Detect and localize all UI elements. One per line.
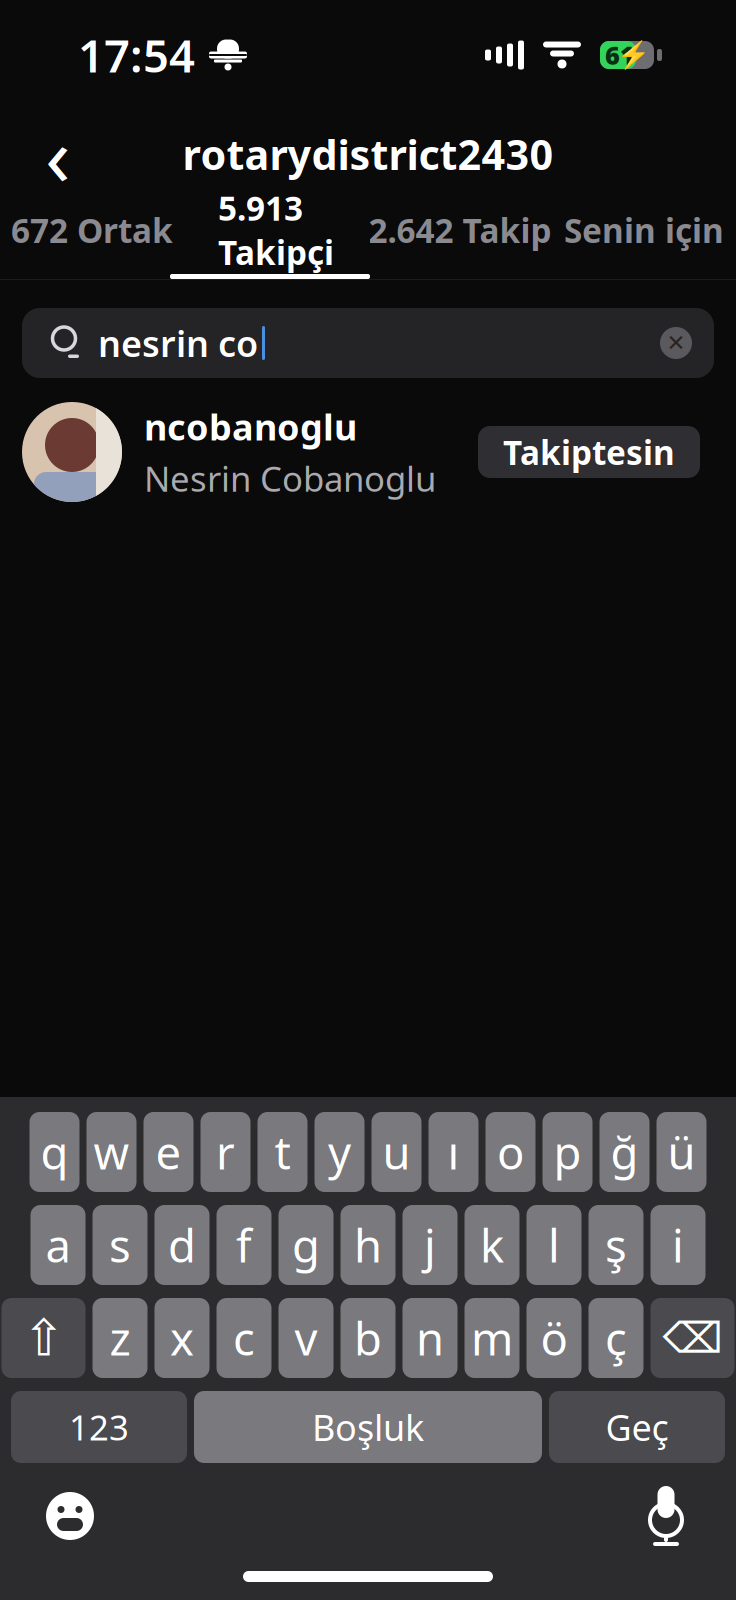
- staticText: i: [672, 1215, 684, 1275]
- staticText: r: [216, 1122, 235, 1182]
- staticText: h: [354, 1215, 382, 1275]
- button[interactable]: Emoji keyboard: [30, 1481, 110, 1551]
- staticText: j: [424, 1215, 436, 1275]
- staticText: u: [382, 1122, 410, 1182]
- button[interactable]: p: [542, 1112, 592, 1192]
- staticText: Nesrin Cobanoglu: [144, 455, 436, 501]
- staticText: ncobanoglu: [144, 403, 357, 450]
- staticText: o: [497, 1122, 524, 1182]
- button[interactable]: w: [86, 1112, 136, 1192]
- staticText: x: [170, 1308, 194, 1368]
- button[interactable]: t: [257, 1112, 307, 1192]
- staticText: ç: [605, 1308, 627, 1368]
- button[interactable]: Clear search: [646, 313, 706, 373]
- staticText: 2.642 Takip: [368, 208, 551, 252]
- button[interactable]: ş: [588, 1205, 643, 1285]
- staticText: l: [548, 1215, 560, 1275]
- button[interactable]: g: [278, 1205, 333, 1285]
- button[interactable]: l: [526, 1205, 581, 1285]
- staticText: nesrin co: [98, 319, 258, 367]
- staticText: ı: [447, 1122, 459, 1182]
- staticText: Boşluk: [312, 1403, 424, 1451]
- staticText: 5.913 Takipçi: [218, 186, 334, 274]
- staticText: c: [233, 1308, 255, 1368]
- staticText: b: [354, 1308, 382, 1368]
- button[interactable]: u: [371, 1112, 421, 1192]
- staticText: 123: [69, 1404, 129, 1450]
- button[interactable]: i: [650, 1205, 705, 1285]
- staticText: ⌫: [662, 1314, 722, 1362]
- button[interactable]: h: [340, 1205, 395, 1285]
- staticText: w: [93, 1122, 129, 1182]
- button[interactable]: Delete: [650, 1298, 734, 1378]
- staticText: k: [480, 1215, 504, 1275]
- staticText: a: [45, 1215, 70, 1275]
- staticText: ş: [605, 1215, 627, 1275]
- button[interactable]: ğ: [599, 1112, 649, 1192]
- button[interactable]: Geç: [549, 1391, 725, 1463]
- button[interactable]: Back: [16, 116, 100, 192]
- button[interactable]: d: [154, 1205, 209, 1285]
- staticText: d: [168, 1215, 196, 1275]
- button[interactable]: n: [402, 1298, 457, 1378]
- staticText: p: [553, 1122, 581, 1182]
- button[interactable]: x: [154, 1298, 209, 1378]
- staticText: ğ: [610, 1122, 638, 1182]
- button[interactable]: k: [464, 1205, 519, 1285]
- button[interactable]: 123: [11, 1391, 187, 1463]
- button[interactable]: ç: [588, 1298, 643, 1378]
- staticText: ✕: [666, 330, 685, 356]
- button[interactable]: y: [314, 1112, 364, 1192]
- staticText: t: [274, 1122, 290, 1182]
- button[interactable]: e: [143, 1112, 193, 1192]
- button[interactable]: 672 Ortak: [0, 198, 184, 262]
- button[interactable]: ü: [656, 1112, 706, 1192]
- staticText: g: [292, 1215, 320, 1275]
- staticText: s: [109, 1215, 131, 1275]
- button[interactable]: r: [200, 1112, 250, 1192]
- staticText: rotarydistrict2430: [182, 127, 553, 181]
- staticText: m: [471, 1308, 513, 1368]
- staticText: 17:54: [78, 25, 195, 85]
- staticText: ü: [667, 1122, 695, 1182]
- staticText: z: [109, 1308, 130, 1368]
- staticText: e: [155, 1122, 181, 1182]
- staticText: ⇧: [22, 1309, 64, 1367]
- button[interactable]: ı: [428, 1112, 478, 1192]
- staticText: Takiptesin: [503, 430, 675, 474]
- staticText: 672 Ortak: [11, 208, 173, 252]
- staticText: ⚡: [617, 40, 650, 70]
- button[interactable]: o: [485, 1112, 535, 1192]
- button[interactable]: v: [278, 1298, 333, 1378]
- button[interactable]: Shift: [1, 1298, 85, 1378]
- button[interactable]: 2.642 Takip: [368, 198, 552, 262]
- button[interactable]: ncobanoglu: [0, 378, 736, 504]
- button[interactable]: a: [30, 1205, 85, 1285]
- staticText: Senin için: [564, 208, 724, 252]
- staticText: 61: [605, 38, 635, 72]
- button[interactable]: s: [92, 1205, 147, 1285]
- staticText: ö: [540, 1308, 567, 1368]
- staticText: n: [416, 1308, 444, 1368]
- button[interactable]: ö: [526, 1298, 581, 1378]
- button[interactable]: q: [29, 1112, 79, 1192]
- staticText: f: [236, 1215, 252, 1275]
- staticText: v: [294, 1308, 317, 1368]
- button[interactable]: j: [402, 1205, 457, 1285]
- button[interactable]: 5.913 Takipçi: [184, 198, 368, 262]
- staticText: ‹: [45, 99, 71, 209]
- button[interactable]: z: [92, 1298, 147, 1378]
- staticText: Geç: [605, 1403, 668, 1451]
- button[interactable]: m: [464, 1298, 519, 1378]
- staticText: q: [40, 1122, 68, 1182]
- button[interactable]: Senin için: [552, 198, 736, 262]
- button[interactable]: b: [340, 1298, 395, 1378]
- button[interactable]: Boşluk: [194, 1391, 542, 1463]
- button[interactable]: c: [216, 1298, 271, 1378]
- button[interactable]: f: [216, 1205, 271, 1285]
- staticText: y: [328, 1122, 351, 1182]
- button[interactable]: Dictation: [626, 1481, 706, 1551]
